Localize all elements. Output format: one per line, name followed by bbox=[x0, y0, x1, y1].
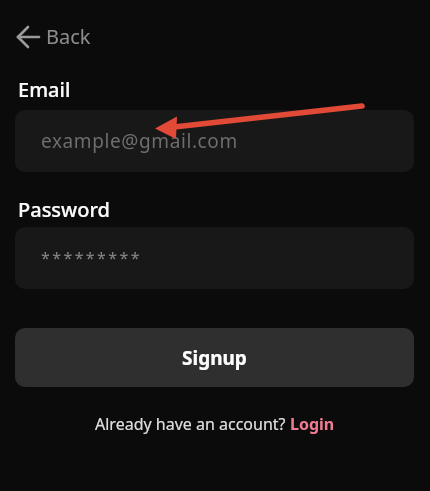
staticText: Already have an account? bbox=[95, 413, 290, 435]
staticText: Password bbox=[18, 196, 110, 223]
staticText: example@gmail.com bbox=[41, 128, 238, 154]
button[interactable]: Login bbox=[290, 413, 335, 435]
staticText: Back bbox=[46, 23, 91, 50]
button[interactable]: ********* bbox=[15, 227, 414, 289]
button[interactable]: Signup bbox=[15, 328, 414, 387]
button[interactable]: Back bbox=[12, 19, 95, 54]
staticText: Email bbox=[18, 76, 71, 103]
staticText: ********* bbox=[41, 247, 142, 269]
button[interactable]: example@gmail.com bbox=[15, 110, 414, 172]
staticText: Signup bbox=[182, 345, 247, 371]
